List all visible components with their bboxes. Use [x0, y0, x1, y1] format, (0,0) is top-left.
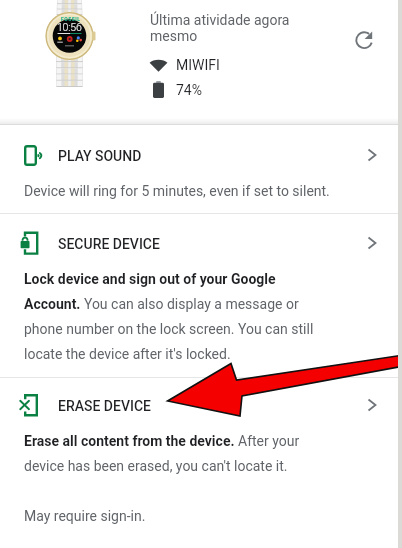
staticText: SECURE DEVICE	[58, 236, 160, 252]
staticText: Device will ring for 5 minutes, even if …	[24, 183, 330, 199]
staticText: Lock device and sign out of your Google …	[24, 271, 326, 362]
button[interactable]: Refresh	[348, 23, 382, 57]
staticText: 10:56	[57, 21, 82, 33]
staticText: FOSSIL	[61, 16, 81, 22]
button[interactable]: SECURE DEVICE	[0, 214, 402, 266]
staticText: Erase all content from the device. After…	[24, 433, 336, 474]
button[interactable]: PLAY SOUND	[0, 125, 402, 177]
staticText: Última atividade agora mesmo	[150, 12, 300, 44]
staticText: PLAY SOUND	[58, 148, 142, 164]
staticText: MIWIFI	[176, 57, 220, 73]
staticText: May require sign-in.	[24, 508, 146, 524]
staticText: ERASE DEVICE	[58, 398, 151, 414]
button[interactable]: ERASE DEVICE	[0, 378, 402, 430]
staticText: 74%	[176, 82, 202, 98]
